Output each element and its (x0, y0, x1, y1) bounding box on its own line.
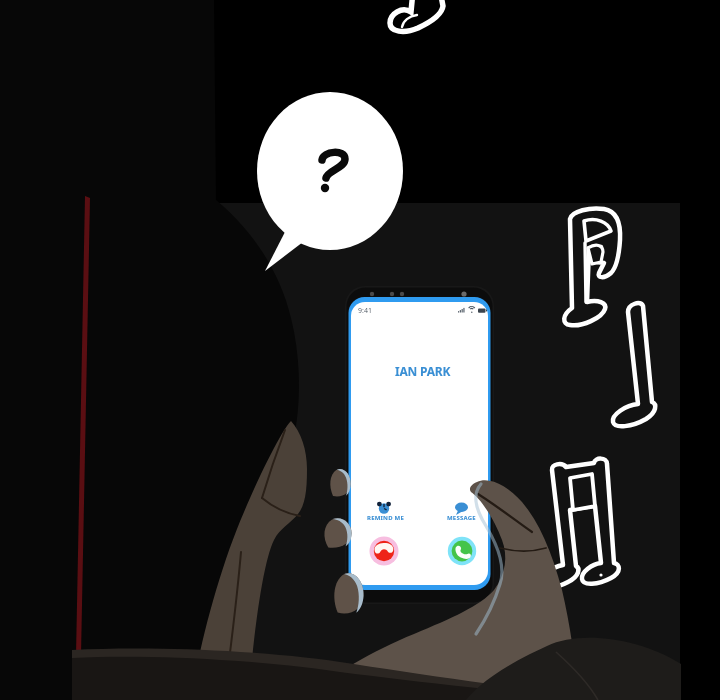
button[interactable]: IAN PARK (395, 363, 451, 379)
staticText: IAN PARK (395, 363, 451, 379)
button[interactable]: REMIND ME (367, 514, 404, 522)
staticText: 9:41 (358, 306, 372, 316)
staticText: REMIND ME (367, 514, 404, 522)
button[interactable]: MESSAGE (447, 514, 476, 522)
staticText: MESSAGE (447, 514, 476, 522)
